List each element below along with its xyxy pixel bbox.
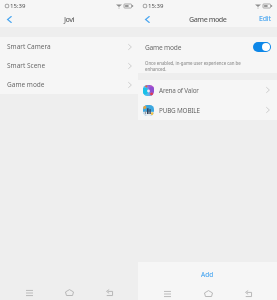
button[interactable]: Home <box>196 287 220 300</box>
button[interactable]: Recents <box>155 287 179 300</box>
button[interactable]: Back <box>97 286 121 299</box>
button[interactable]: Arena of Valor <box>138 80 277 100</box>
staticText: Smart Camera <box>7 42 51 51</box>
button[interactable]: Back <box>236 287 260 300</box>
button[interactable]: Smart Scene <box>0 56 138 75</box>
staticText: PUBG MOBILE <box>159 106 200 115</box>
staticText: Game mode <box>189 14 227 24</box>
staticText: Game mode <box>7 80 45 89</box>
button[interactable]: Add <box>138 262 277 287</box>
button[interactable]: PUBG MOBILE <box>138 100 277 120</box>
button[interactable]: Smart Camera <box>0 37 138 56</box>
button[interactable]: Edit <box>253 11 277 27</box>
staticText: 15:39 <box>148 2 164 10</box>
button[interactable]: Home <box>57 286 81 299</box>
button[interactable]: Back <box>138 11 156 27</box>
staticText: Arena of Valor <box>159 86 199 95</box>
button[interactable]: Game mode <box>0 75 138 94</box>
staticText: Jovi <box>64 14 75 24</box>
button[interactable]: Recents <box>17 286 41 299</box>
staticText: Game mode <box>145 43 182 52</box>
staticText: Once enabled, in-game user experience ca… <box>145 60 241 72</box>
button[interactable]: Game mode <box>138 37 277 57</box>
staticText: 15:39 <box>10 2 26 10</box>
button[interactable]: Back <box>0 11 18 27</box>
staticText: Smart Scene <box>7 61 46 70</box>
staticText: Add <box>201 270 214 279</box>
staticText: Edit <box>259 14 271 24</box>
